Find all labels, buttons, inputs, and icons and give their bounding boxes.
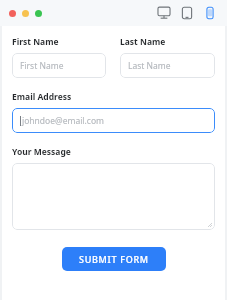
- button[interactable]: SUBMIT FORM: [62, 247, 166, 271]
- staticText: First Name: [20, 60, 64, 72]
- staticText: First Name: [12, 36, 59, 48]
- button[interactable]: johndoe@email.com: [12, 108, 215, 133]
- staticText: Last Name: [128, 60, 171, 72]
- staticText: johndoe@email.com: [22, 115, 104, 127]
- button[interactable]: [12, 163, 215, 230]
- button[interactable]: Last Name: [120, 53, 215, 78]
- staticText: Email Address: [12, 91, 72, 103]
- staticText: SUBMIT FORM: [79, 253, 149, 265]
- button[interactable]: First Name: [12, 53, 106, 78]
- button[interactable]: Tablet view: [179, 5, 195, 21]
- button[interactable]: Mobile view: [202, 5, 218, 21]
- button[interactable]: Desktop view: [156, 5, 172, 21]
- staticText: Your Message: [12, 146, 71, 158]
- staticText: Last Name: [120, 36, 166, 48]
